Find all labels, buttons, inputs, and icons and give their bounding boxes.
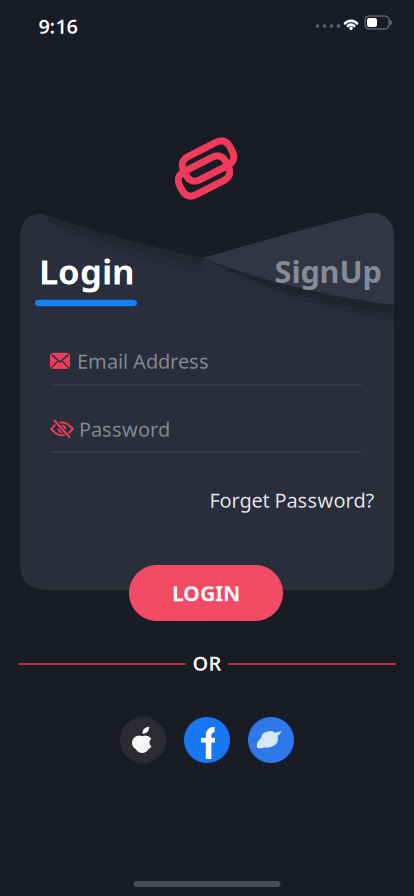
- button[interactable]: Email Address: [50, 348, 362, 385]
- staticText: Password: [79, 416, 170, 442]
- staticText: Forget Password?: [209, 487, 374, 513]
- button[interactable]: Sign in with Twitter: [248, 717, 294, 763]
- staticText: LOGIN: [172, 579, 240, 607]
- button[interactable]: SignUp: [274, 251, 381, 291]
- button[interactable]: LOGIN: [129, 565, 283, 621]
- staticText: 9:16: [38, 13, 77, 39]
- staticText: SignUp: [274, 251, 381, 291]
- button[interactable]: Sign in with Facebook: [184, 717, 230, 763]
- button[interactable]: Forget Password?: [209, 487, 374, 513]
- staticText: Email Address: [77, 348, 209, 374]
- staticText: OR: [192, 650, 221, 676]
- button[interactable]: Sign in with Apple: [120, 717, 166, 763]
- staticText: Login: [39, 248, 135, 294]
- button[interactable]: Password: [50, 416, 362, 452]
